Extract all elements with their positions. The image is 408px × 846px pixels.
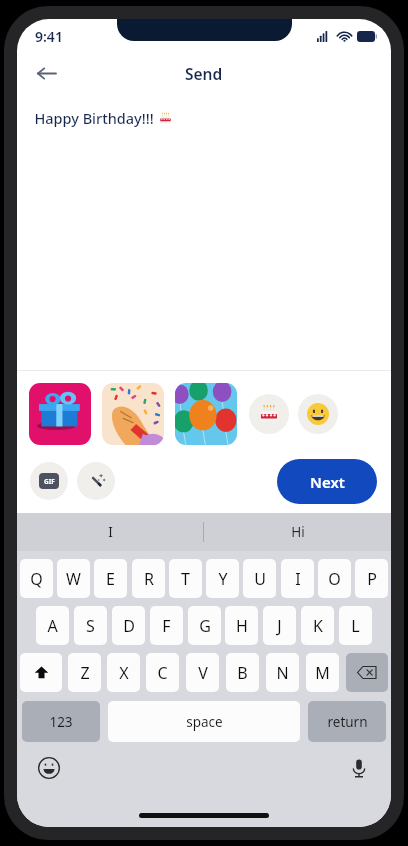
button[interactable]: space <box>108 701 300 742</box>
staticText: 9:41 <box>35 27 63 46</box>
staticText: V <box>198 662 208 684</box>
staticText: L <box>351 615 360 637</box>
button[interactable]: C <box>146 653 179 692</box>
staticText: K <box>313 615 323 637</box>
staticText: X <box>119 662 129 684</box>
staticText: Send <box>185 63 223 84</box>
staticText: H <box>236 615 248 637</box>
staticText: O <box>328 568 341 590</box>
button[interactable]: Back <box>27 54 65 92</box>
staticText: Next <box>310 472 345 492</box>
staticText: T <box>181 568 190 590</box>
staticText: C <box>157 662 168 684</box>
staticText: J <box>277 615 282 637</box>
staticText: F <box>162 615 171 637</box>
button[interactable]: Hi <box>204 513 391 551</box>
button[interactable]: B <box>226 653 259 692</box>
button[interactable]: A <box>36 606 69 645</box>
staticText: return <box>327 713 368 731</box>
staticText: S <box>86 615 95 637</box>
button[interactable]: N <box>266 653 299 692</box>
staticText: U <box>254 568 266 590</box>
staticText: Q <box>30 568 43 590</box>
button[interactable]: Voice input <box>345 754 373 782</box>
staticText: E <box>106 568 115 590</box>
button[interactable]: Magic effects <box>77 462 115 500</box>
button[interactable]: Y <box>206 559 239 598</box>
button[interactable]: Confetti sticker <box>102 383 164 445</box>
staticText: P <box>367 568 377 590</box>
button[interactable]: S <box>74 606 107 645</box>
button[interactable]: I <box>281 559 314 598</box>
button[interactable]: O <box>318 559 351 598</box>
staticText: Z <box>80 662 90 684</box>
button[interactable]: Next <box>277 459 377 504</box>
staticText: R <box>144 568 154 590</box>
button[interactable]: Z <box>68 653 101 692</box>
staticText: A <box>47 615 58 637</box>
button[interactable]: R <box>132 559 165 598</box>
button[interactable]: I <box>17 513 203 551</box>
button[interactable]: K <box>301 606 334 645</box>
staticText: N <box>276 662 289 684</box>
staticText: GIF <box>44 477 55 486</box>
button[interactable]: P <box>355 559 388 598</box>
button[interactable]: F <box>150 606 183 645</box>
staticText: Happy Birthday!!! <box>34 108 154 128</box>
staticText: W <box>66 568 81 590</box>
staticText: B <box>237 662 248 684</box>
button[interactable]: J <box>263 606 296 645</box>
button[interactable]: Smile emoji <box>298 394 338 434</box>
button[interactable]: U <box>243 559 276 598</box>
button[interactable]: M <box>306 653 339 692</box>
button[interactable]: 123 <box>22 701 100 742</box>
staticText: Y <box>218 568 228 590</box>
staticText: I <box>295 568 301 590</box>
staticText: 123 <box>49 713 73 731</box>
button[interactable]: Backspace <box>346 653 388 692</box>
button[interactable]: W <box>57 559 90 598</box>
button[interactable]: Cake emoji <box>249 394 289 434</box>
button[interactable]: T <box>169 559 202 598</box>
button[interactable]: return <box>308 701 386 742</box>
button[interactable]: GIF <box>30 462 68 500</box>
button[interactable]: Q <box>20 559 53 598</box>
staticText: I <box>108 523 113 541</box>
button[interactable]: E <box>94 559 127 598</box>
button[interactable]: H <box>225 606 258 645</box>
staticText: M <box>315 662 330 684</box>
button[interactable]: Gift sticker <box>29 383 91 445</box>
button[interactable]: V <box>186 653 219 692</box>
button[interactable]: Emoji keyboard <box>35 754 63 782</box>
staticText: space <box>186 713 223 731</box>
button[interactable]: Shift <box>20 653 62 692</box>
staticText: G <box>199 615 211 637</box>
button[interactable]: G <box>188 606 221 645</box>
button[interactable]: X <box>107 653 140 692</box>
staticText: D <box>123 615 135 637</box>
staticText: Hi <box>291 523 305 541</box>
button[interactable]: D <box>112 606 145 645</box>
button[interactable]: L <box>339 606 372 645</box>
button[interactable]: Balloons sticker <box>175 383 237 445</box>
